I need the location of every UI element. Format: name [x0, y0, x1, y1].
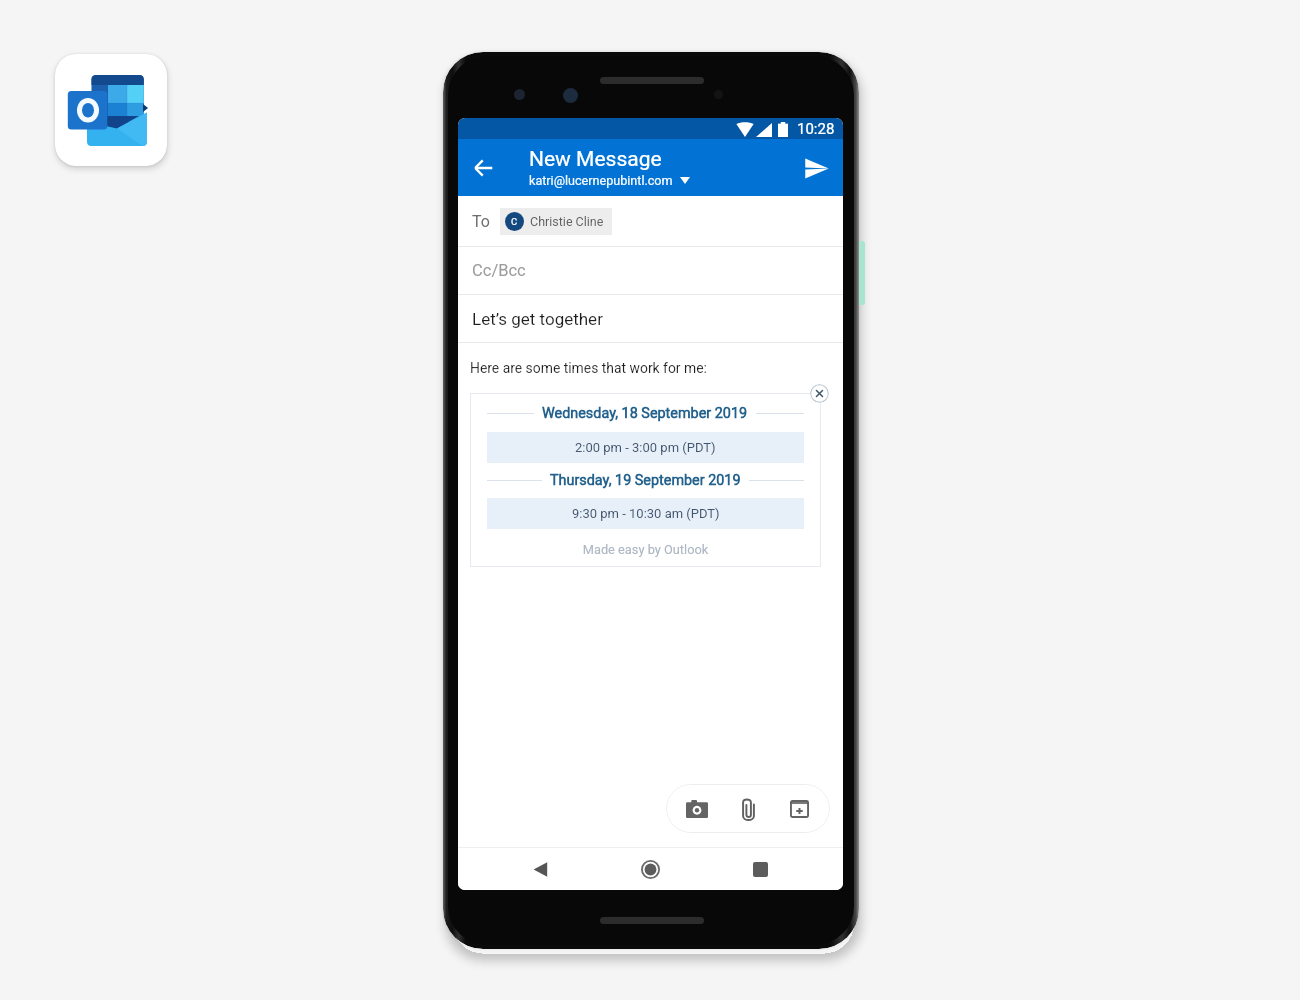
staticText: 10:28: [797, 120, 835, 138]
button[interactable]: Back: [519, 848, 561, 890]
button[interactable]: New Message: [529, 147, 690, 188]
staticText: Let’s get together: [472, 309, 603, 329]
button[interactable]: Send: [797, 148, 837, 188]
staticText: Cc/Bcc: [472, 261, 526, 280]
button[interactable]: C: [500, 208, 612, 235]
staticText: Christie Cline: [530, 214, 604, 229]
button[interactable]: Recent apps: [739, 848, 781, 890]
button[interactable]: Camera: [677, 789, 717, 829]
button[interactable]: Remove suggested times: [810, 384, 829, 403]
staticText: Thursday, 19 September 2019: [550, 472, 741, 489]
button[interactable]: Attach file: [728, 789, 768, 829]
staticText: Made easy by Outlook: [487, 542, 804, 557]
staticText: 9:30 pm - 10:30 am (PDT): [572, 506, 720, 521]
staticText: 2:00 pm - 3:00 pm (PDT): [575, 440, 716, 455]
button[interactable]: To: [458, 196, 843, 246]
staticText: New Message: [529, 147, 662, 172]
button[interactable]: Cc/Bcc: [458, 247, 843, 294]
button[interactable]: 9:30 pm - 10:30 am (PDT): [487, 498, 804, 529]
staticText: To: [472, 212, 490, 231]
staticText: katri@lucernepubintl.com: [529, 173, 673, 188]
button[interactable]: Add calendar event: [779, 789, 819, 829]
button[interactable]: 2:00 pm - 3:00 pm (PDT): [487, 432, 804, 463]
button[interactable]: Back: [463, 148, 503, 188]
staticText: Here are some times that work for me:: [470, 360, 707, 376]
button[interactable]: Outlook: [55, 54, 167, 166]
button[interactable]: Let’s get together: [458, 295, 843, 342]
staticText: C: [511, 216, 518, 227]
button[interactable]: Home: [629, 848, 671, 890]
staticText: Wednesday, 18 September 2019: [542, 405, 748, 422]
